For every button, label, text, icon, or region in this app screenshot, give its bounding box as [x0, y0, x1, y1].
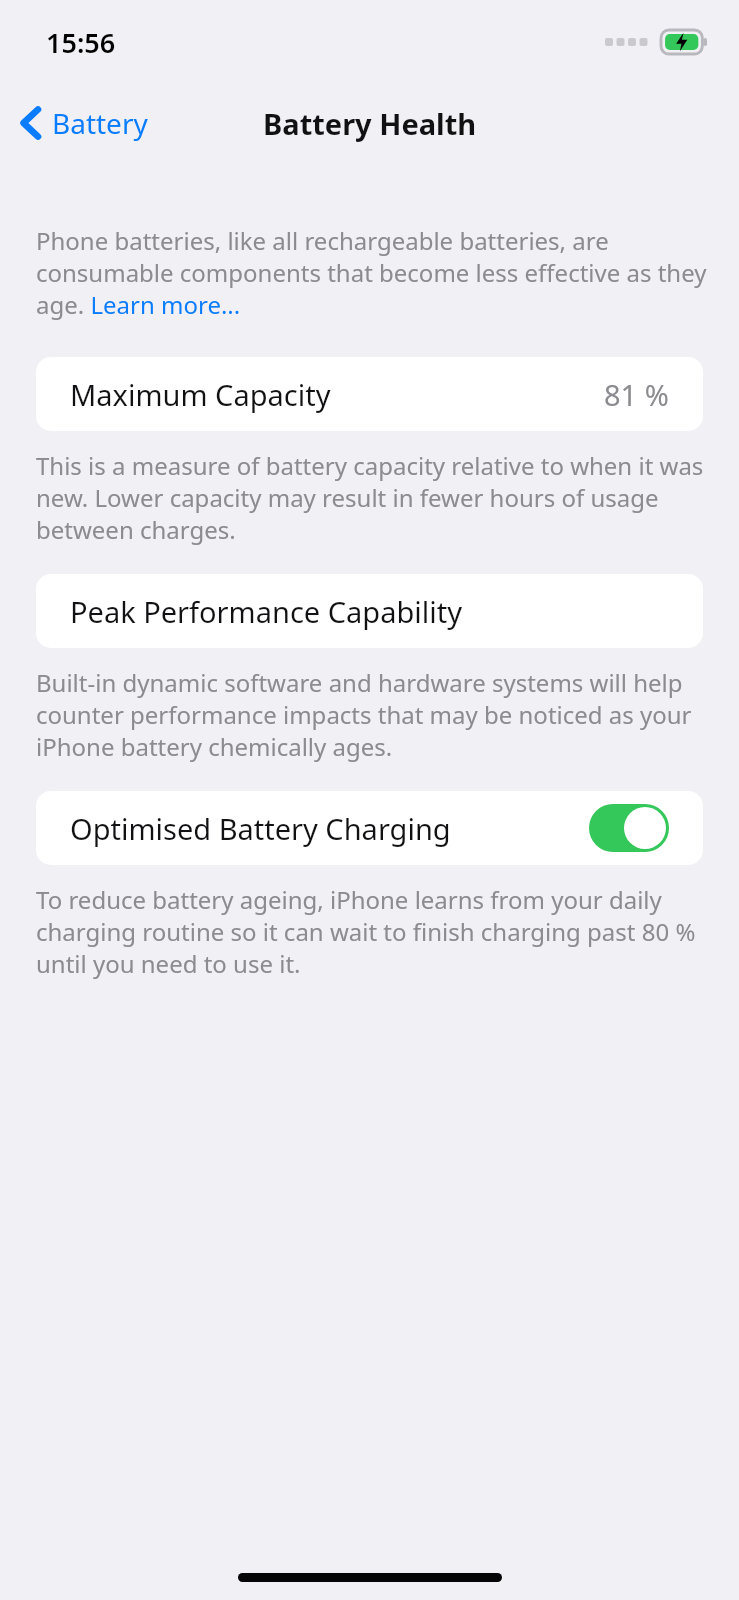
staticText: 81 %: [604, 375, 669, 414]
staticText: Battery: [52, 104, 148, 142]
staticText: This is a measure of battery capacity re…: [36, 449, 709, 546]
button[interactable]: Peak Performance Capability: [36, 574, 703, 648]
button[interactable]: Maximum Capacity: [36, 357, 703, 431]
button[interactable]: Battery: [0, 98, 160, 148]
staticText: Built-in dynamic software and hardware s…: [36, 666, 709, 763]
staticText: Optimised Battery Charging: [70, 809, 451, 848]
staticText: Peak Performance Capability: [70, 592, 462, 631]
staticText: To reduce battery ageing, iPhone learns …: [36, 883, 709, 980]
staticText: Phone batteries, like all rechargeable b…: [36, 224, 709, 321]
staticText: Battery Health: [263, 104, 477, 143]
button[interactable]: Optimised Battery Charging: [36, 791, 703, 865]
button[interactable]: Optimised Battery Charging toggle: [589, 804, 669, 852]
staticText: 15:56: [46, 24, 116, 61]
staticText: Maximum Capacity: [70, 375, 331, 414]
